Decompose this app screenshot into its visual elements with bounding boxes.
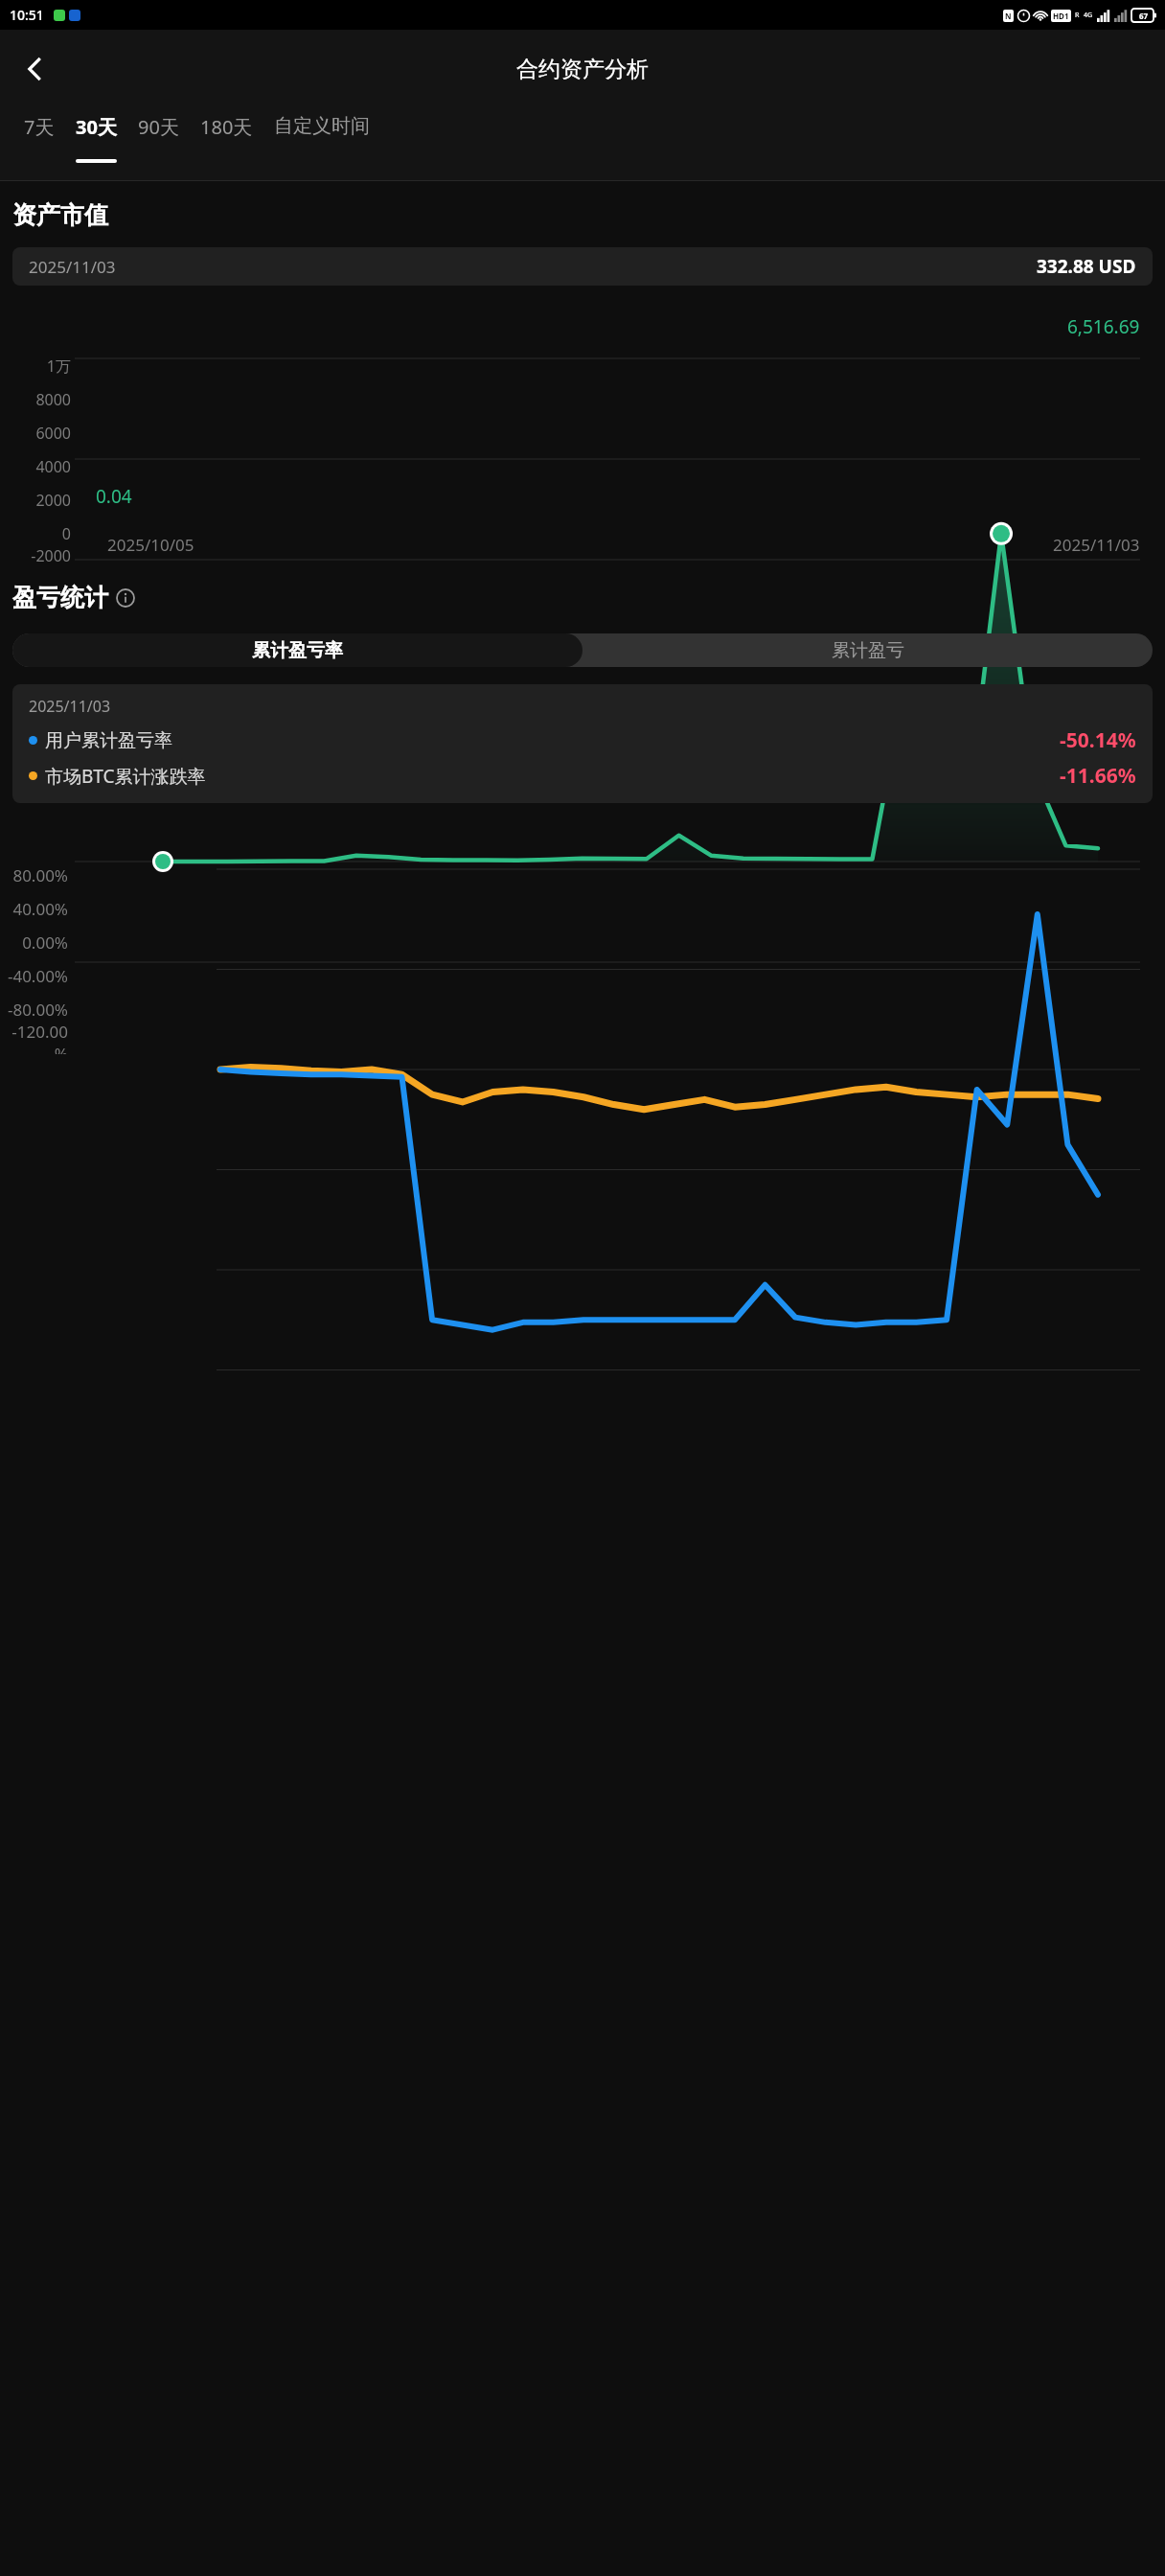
staticText: 7天: [24, 114, 55, 140]
staticText: 10:51: [10, 6, 44, 24]
staticText: 盈亏统计: [12, 583, 108, 612]
staticText: 用户累计盈亏率: [45, 729, 172, 752]
staticText: 67: [1139, 11, 1149, 21]
staticText: 2025/11/03: [29, 696, 111, 717]
button[interactable]: 自定义时间: [263, 108, 380, 157]
staticText: 0: [0, 523, 71, 544]
staticText: 180天: [200, 114, 253, 140]
staticText: 332.88 USD: [1037, 254, 1136, 279]
button[interactable]: 累计盈亏: [582, 633, 1153, 667]
staticText: 0.00%: [0, 931, 68, 954]
staticText: 2025/10/05: [107, 534, 194, 556]
staticText: -50.14%: [1060, 726, 1136, 754]
button[interactable]: 2025/11/03: [12, 247, 1153, 286]
staticText: 0.04: [96, 484, 132, 509]
staticText: 累计盈亏率: [252, 639, 343, 662]
staticText: 4000: [0, 456, 71, 477]
button[interactable]: 180天: [190, 108, 263, 159]
staticText: HD1: [1053, 11, 1069, 21]
staticText: -40.00%: [0, 965, 68, 987]
staticText: 80.00%: [0, 864, 68, 886]
staticText: -80.00%: [0, 999, 68, 1021]
button[interactable]: 90天: [127, 108, 190, 159]
staticText: 2025/11/03: [1053, 534, 1140, 556]
staticText: 30天: [76, 114, 117, 140]
button[interactable]: Info: [115, 587, 136, 609]
button[interactable]: Back: [8, 42, 61, 96]
staticText: 自定义时间: [274, 114, 370, 138]
staticText: -11.66%: [1060, 762, 1136, 790]
button[interactable]: 30天: [65, 108, 127, 163]
staticText: -2000: [0, 545, 71, 566]
staticText: 市场BTC累计涨跌率: [45, 764, 206, 789]
staticText: 1万: [0, 356, 71, 377]
staticText: 40.00%: [0, 898, 68, 920]
button[interactable]: 2025/11/03: [12, 684, 1153, 803]
staticText: R: [1075, 11, 1080, 20]
staticText: 合约资产分析: [516, 56, 649, 83]
staticText: 资产市值: [12, 200, 108, 230]
staticText: -120.00%: [0, 1021, 68, 1054]
staticText: 2025/11/03: [29, 256, 116, 278]
staticText: 8000: [0, 389, 71, 410]
staticText: 4G: [1084, 11, 1093, 20]
button[interactable]: 累计盈亏率: [12, 633, 582, 667]
staticText: N: [1005, 11, 1012, 21]
staticText: 累计盈亏: [832, 639, 904, 662]
staticText: 6000: [0, 423, 71, 444]
staticText: 6,516.69: [1067, 314, 1140, 339]
button[interactable]: 7天: [13, 108, 65, 159]
staticText: 2000: [0, 490, 71, 511]
staticText: 90天: [138, 114, 179, 140]
